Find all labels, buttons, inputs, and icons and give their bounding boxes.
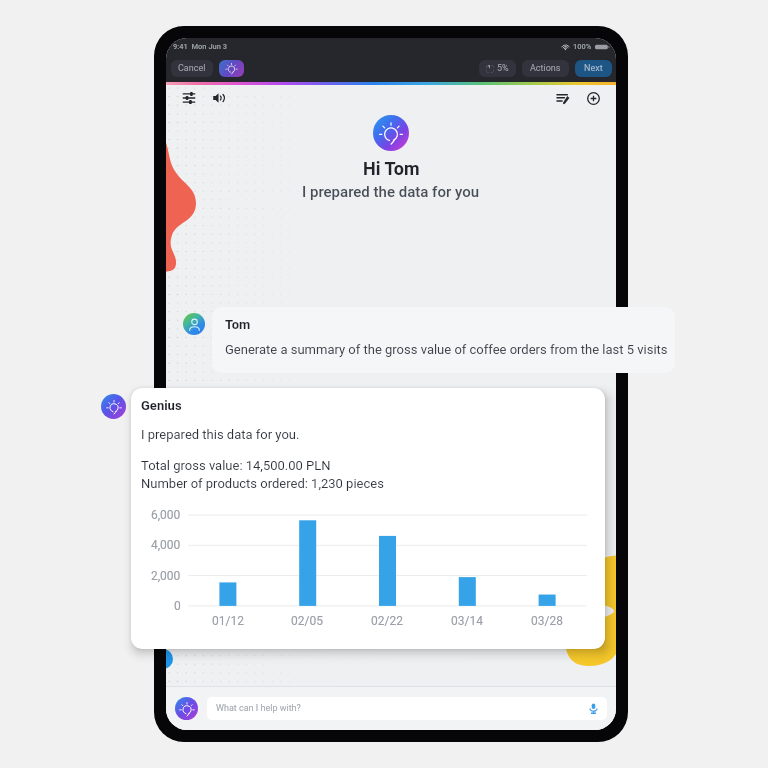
button[interactable]: Sound [209, 88, 229, 108]
staticText: 5% [497, 63, 509, 74]
staticText: I prepared this data for you. [141, 427, 300, 442]
button[interactable]: What can I help with? [207, 697, 607, 720]
staticText: Tom [225, 317, 251, 332]
button[interactable]: 5% [479, 60, 516, 77]
button[interactable]: Genius [219, 60, 244, 77]
staticText: Generate a summary of the gross value of… [225, 342, 668, 357]
staticText: 03/14 [451, 614, 483, 628]
button[interactable]: Voice input [587, 702, 600, 715]
staticText: 2,000 [151, 569, 181, 583]
button[interactable]: Actions [522, 60, 569, 77]
staticText: Hi Tom [363, 158, 420, 179]
staticText: 01/12 [212, 614, 244, 628]
staticText: What can I help with? [216, 703, 301, 714]
staticText: 4,000 [151, 538, 181, 552]
staticText: 100% [573, 42, 592, 51]
staticText: Total gross value: 14,500.00 PLN [141, 458, 331, 473]
staticText: 0 [174, 599, 181, 613]
staticText: Genius [141, 398, 182, 413]
staticText: Next [584, 63, 603, 74]
staticText: I prepared the data for you [302, 183, 480, 201]
staticText: Cancel [178, 63, 206, 74]
button[interactable]: Compose [553, 88, 573, 108]
staticText: 03/28 [531, 614, 563, 628]
button[interactable]: Next [575, 60, 612, 77]
button[interactable]: Add [583, 88, 603, 108]
staticText: Number of products ordered: 1,230 pieces [141, 476, 384, 491]
button[interactable]: Cancel [171, 60, 213, 77]
staticText: 02/22 [371, 614, 403, 628]
staticText: Actions [530, 63, 561, 74]
staticText: 02/05 [291, 614, 323, 628]
button[interactable]: Tune [179, 88, 199, 108]
button[interactable]: Genius assistant [175, 697, 198, 720]
staticText: 6,000 [151, 508, 181, 522]
staticText: 9:41 Mon Jun 3 [173, 42, 228, 51]
